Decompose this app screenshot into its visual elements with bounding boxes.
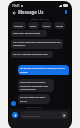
button[interactable]: Why am I restricted to deposits only? — [11, 51, 53, 58]
staticText: Email — [30, 24, 37, 27]
staticText: Today 10:41 PM — [31, 17, 49, 20]
staticText: Hours — [43, 24, 50, 27]
staticText: Address — [14, 24, 24, 27]
button[interactable]: Hours — [41, 22, 52, 29]
staticText: Where can I find my tracking number? — [13, 32, 45, 35]
button[interactable]: Where can I find my tracking number? — [11, 30, 47, 37]
staticText: Today 10:44 PM — [26, 106, 41, 109]
staticText: Name — [56, 24, 63, 27]
button[interactable]: Why are you requesting additional docume… — [11, 39, 63, 49]
staticText: Sounds like you are having trouble with … — [20, 81, 52, 90]
button[interactable]: Email — [28, 22, 39, 29]
button[interactable]: Name — [54, 22, 65, 29]
button[interactable]: Send — [61, 112, 67, 118]
staticText: Type a message — [22, 114, 40, 117]
button[interactable]: More options — [63, 9, 69, 15]
button[interactable]: Address — [12, 22, 26, 29]
staticText: 10:41 — [12, 4, 20, 8]
staticText: my app says it can't verify my location,… — [20, 67, 67, 73]
button[interactable]: Type a message — [20, 111, 68, 119]
staticText: Message Us — [18, 9, 44, 15]
button[interactable]: Add attachment — [12, 112, 18, 118]
staticText: Why are you requesting additional docume… — [13, 41, 61, 47]
button[interactable]: Back — [10, 9, 17, 16]
staticText: Why am I restricted to deposits only? — [13, 53, 48, 56]
staticText: Can you confirm you are in the US? — [20, 96, 48, 102]
